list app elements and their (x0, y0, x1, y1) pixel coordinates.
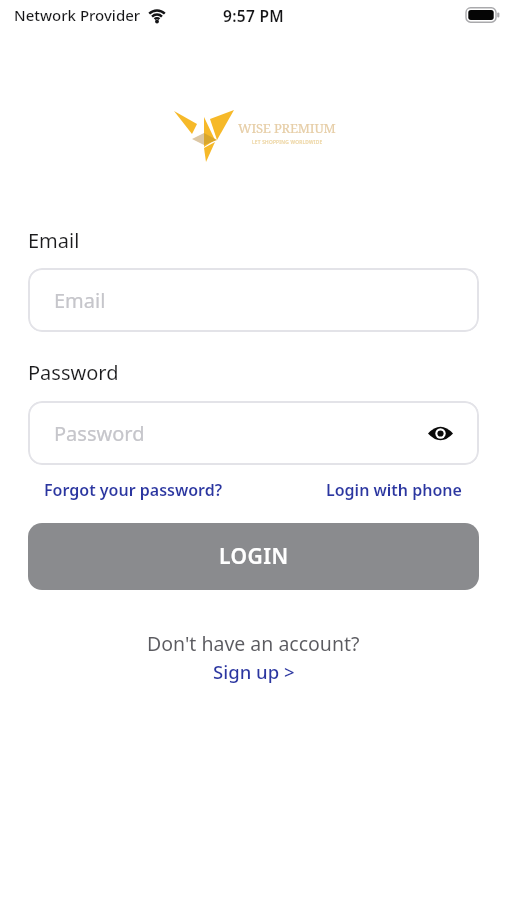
button[interactable]: Forgot your password? (44, 479, 223, 501)
staticText: LOGIN (219, 542, 289, 571)
button[interactable]: Sign up > (213, 659, 295, 684)
staticText: Email (54, 287, 106, 314)
staticText: Network Provider (14, 5, 141, 25)
button[interactable]: Login with phone (326, 479, 462, 501)
staticText: Password (54, 420, 145, 447)
staticText: WISE PREMIUM (238, 119, 336, 137)
staticText: Password (28, 359, 119, 386)
button[interactable]: Password (28, 401, 479, 465)
button[interactable]: LOGIN (28, 523, 479, 590)
button[interactable]: Email (28, 268, 479, 332)
staticText: Don't have an account? (147, 630, 360, 657)
staticText: Email (28, 227, 80, 254)
staticText: 9:57 PM (223, 5, 284, 26)
staticText: LET SHOPPING WORLDWIDE (252, 139, 323, 146)
